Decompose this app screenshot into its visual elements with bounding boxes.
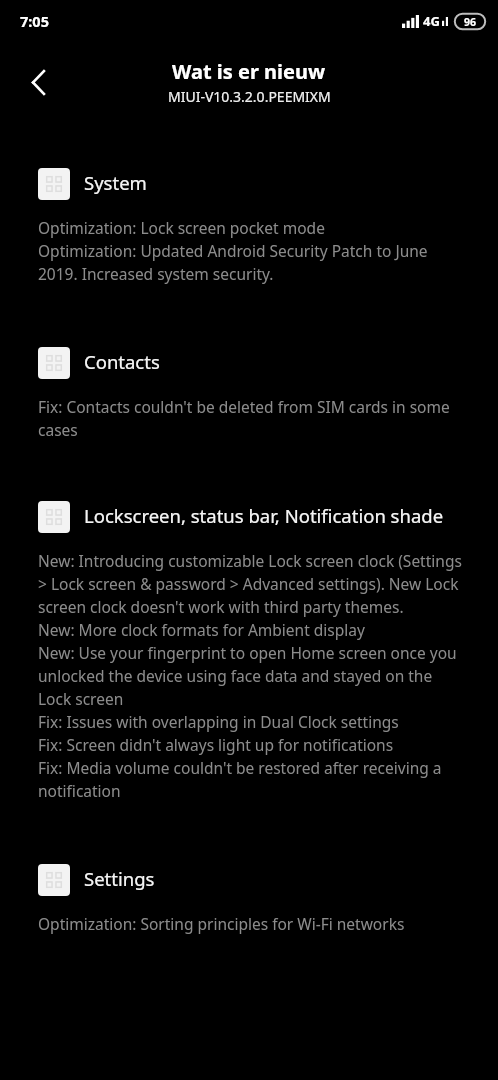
button[interactable]: Contacts <box>0 347 498 379</box>
button[interactable]: Settings <box>0 864 498 896</box>
staticText: Fix: Contacts couldn't be deleted from S… <box>38 396 468 441</box>
staticText: Optimization: Sorting principles for Wi-… <box>38 913 468 934</box>
staticText: 7:05 <box>20 11 49 31</box>
staticText: Settings <box>84 866 155 891</box>
staticText: Lockscreen, status bar, Notification sha… <box>84 503 444 528</box>
staticText: Contacts <box>84 349 160 374</box>
button[interactable]: Lockscreen, status bar, Notification sha… <box>0 501 498 533</box>
staticText: 96 <box>464 15 477 29</box>
button[interactable]: Back <box>14 58 62 106</box>
staticText: 4G <box>423 12 440 30</box>
staticText: New: Introducing customizable Lock scree… <box>38 550 468 802</box>
staticText: Wat is er nieuw <box>172 58 326 85</box>
button[interactable]: System <box>0 168 498 200</box>
staticText: MIUI-V10.3.2.0.PEEMIXM <box>168 87 331 106</box>
staticText: System <box>84 170 147 195</box>
staticText: Optimization: Lock screen pocket mode Op… <box>38 217 468 285</box>
